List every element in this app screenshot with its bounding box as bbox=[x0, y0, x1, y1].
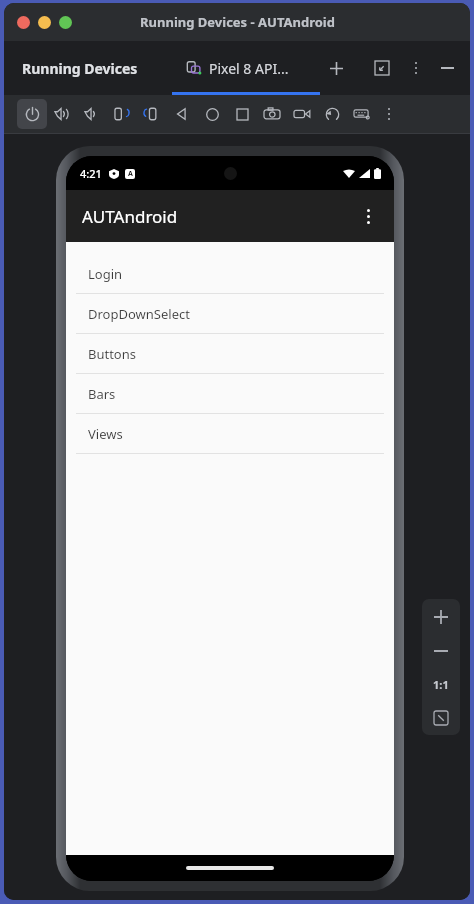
staticText: Bars bbox=[88, 385, 116, 403]
button[interactable]: Volume up bbox=[47, 99, 77, 129]
staticText: Pixel 8 API... bbox=[209, 59, 289, 78]
button[interactable]: Screenshot bbox=[257, 99, 287, 129]
staticText: Running Devices bbox=[22, 59, 138, 78]
button[interactable]: More options bbox=[348, 196, 388, 236]
button[interactable]: Views bbox=[66, 414, 394, 454]
button[interactable]: Keyboard bbox=[347, 99, 377, 129]
button[interactable]: History bbox=[317, 99, 347, 129]
button[interactable]: Minimize panel bbox=[369, 55, 395, 81]
staticText: Views bbox=[88, 425, 123, 443]
button[interactable]: Pixel 8 API... bbox=[187, 59, 289, 78]
button[interactable]: Actual size bbox=[422, 667, 460, 701]
button[interactable]: More options bbox=[404, 56, 428, 80]
button[interactable]: Home bbox=[197, 99, 227, 129]
staticText: AUTAndroid bbox=[82, 205, 178, 228]
button[interactable]: Back bbox=[167, 99, 197, 129]
staticText: Buttons bbox=[88, 345, 136, 363]
button[interactable]: Buttons bbox=[66, 334, 394, 374]
staticText: Running Devices - AUTAndroid bbox=[140, 13, 335, 31]
button[interactable]: Bars bbox=[66, 374, 394, 414]
button[interactable]: Volume down bbox=[77, 99, 107, 129]
button[interactable]: More actions bbox=[377, 102, 401, 126]
button[interactable]: Overview bbox=[227, 99, 257, 129]
button[interactable]: Fit to window bbox=[422, 701, 460, 735]
staticText: 4:21 bbox=[80, 166, 102, 181]
button[interactable]: Zoom in bbox=[422, 599, 460, 635]
button[interactable]: Record screen bbox=[287, 99, 317, 129]
button[interactable]: Zoom out bbox=[422, 635, 460, 667]
button[interactable]: Rotate right bbox=[137, 99, 167, 129]
button[interactable]: Hide bbox=[434, 55, 460, 81]
staticText: A bbox=[128, 169, 133, 179]
staticText: DropDownSelect bbox=[88, 305, 190, 323]
button[interactable]: Login bbox=[66, 254, 394, 294]
button[interactable]: Add device bbox=[322, 54, 350, 82]
staticText: 1:1 bbox=[433, 677, 449, 692]
button[interactable]: Power bbox=[17, 99, 47, 129]
button[interactable]: DropDownSelect bbox=[66, 294, 394, 334]
staticText: Login bbox=[88, 265, 123, 283]
button[interactable]: Rotate left bbox=[107, 99, 137, 129]
